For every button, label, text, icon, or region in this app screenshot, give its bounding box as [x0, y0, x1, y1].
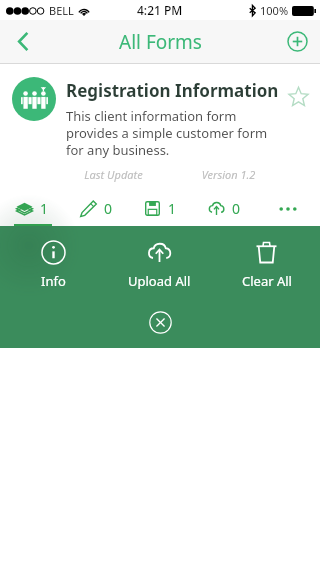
staticText: 1 [40, 199, 49, 218]
staticText: 0 [104, 199, 113, 218]
button[interactable]: Back [0, 20, 46, 63]
staticText: 0 [232, 199, 241, 218]
button[interactable]: 1 [128, 191, 192, 226]
staticText: 4:21 PM [137, 2, 183, 18]
button[interactable]: 0 [192, 191, 256, 226]
staticText: 100% [260, 3, 289, 18]
button[interactable]: 1 [0, 191, 64, 226]
staticText: BELL [49, 3, 74, 18]
staticText: Upload All [128, 272, 191, 290]
button[interactable]: Registration Information [0, 64, 320, 191]
button[interactable]: Clear All [213, 240, 320, 290]
staticText: Last Update [56, 167, 171, 182]
staticText: All Forms [119, 29, 202, 55]
staticText: Version 1.2 [171, 167, 286, 182]
staticText: 1 [168, 199, 177, 218]
button[interactable]: Favourite [279, 77, 317, 115]
staticText: This client information form provides a … [66, 107, 279, 159]
button[interactable]: Upload All [106, 240, 213, 290]
staticText: Clear All [242, 272, 292, 290]
button[interactable]: 0 [64, 191, 128, 226]
staticText: Info [41, 272, 66, 290]
button[interactable]: More options [256, 191, 320, 226]
button[interactable]: Close [143, 305, 177, 339]
button[interactable]: Info [0, 240, 106, 290]
staticText: Registration Information [66, 79, 279, 102]
button[interactable]: Add form [274, 20, 320, 63]
